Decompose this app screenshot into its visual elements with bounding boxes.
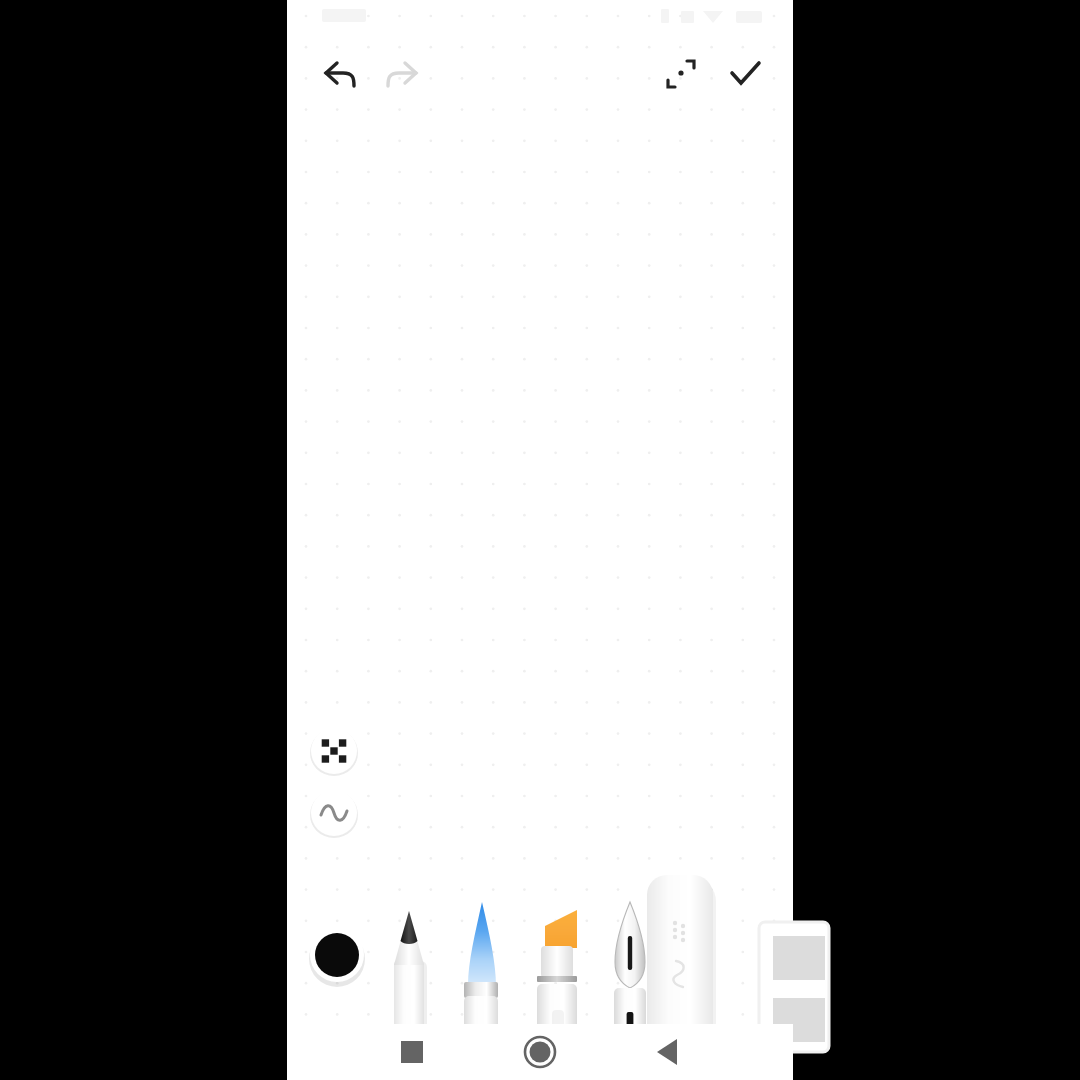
button[interactable]: Done: [719, 48, 771, 100]
button[interactable]: Undo: [313, 48, 365, 100]
button[interactable]: Home: [516, 1028, 564, 1076]
button[interactable]: Pattern fill: [309, 726, 359, 776]
button[interactable]: Recent apps: [388, 1028, 436, 1076]
button[interactable]: Smooth stroke: [309, 788, 359, 838]
button[interactable]: Back: [644, 1028, 692, 1076]
button[interactable]: Fit to screen: [655, 48, 707, 100]
button[interactable]: Redo: [377, 48, 429, 100]
